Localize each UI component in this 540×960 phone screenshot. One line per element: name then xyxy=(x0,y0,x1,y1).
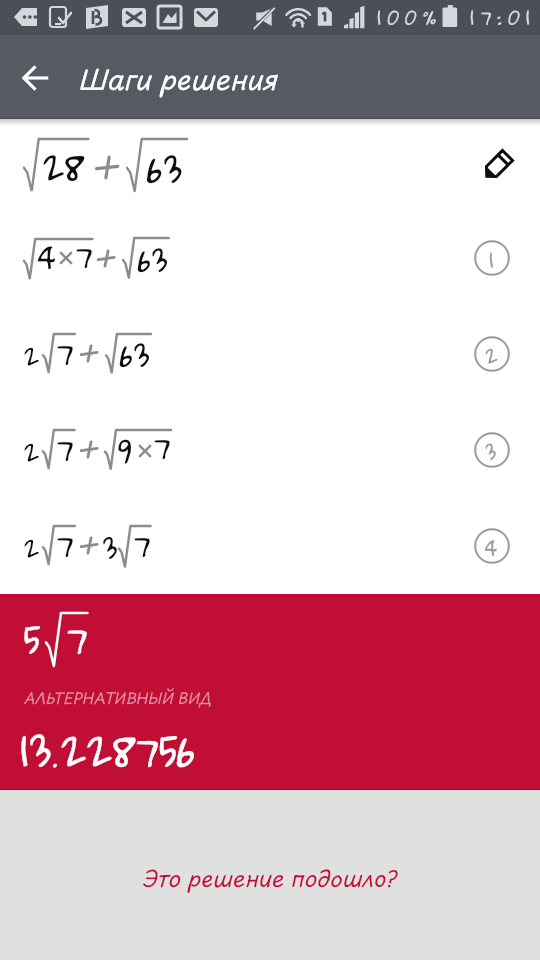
button[interactable]: Это решение подошло? xyxy=(147,861,402,894)
staticText: 13.228756 xyxy=(25,711,202,790)
button[interactable]: Edit xyxy=(474,142,520,188)
staticText: 1 xyxy=(491,240,496,276)
staticText: АЛЬТЕРНАТИВНЫЙ ВИД xyxy=(27,686,215,709)
staticText: 63 xyxy=(142,231,172,288)
staticText: 7 xyxy=(137,516,154,573)
staticText: 7 xyxy=(60,420,77,477)
button[interactable]: 2 xyxy=(0,498,540,594)
staticText: 100% xyxy=(380,0,447,33)
staticText: 4 xyxy=(42,228,60,285)
button[interactable]: Back xyxy=(12,54,60,102)
button[interactable]: Step 1 xyxy=(474,240,510,276)
button[interactable]: Step 3 xyxy=(474,432,510,468)
button[interactable]: 2 xyxy=(0,306,540,402)
button[interactable]: 2 xyxy=(0,402,540,498)
staticText: Это решение подошло? xyxy=(147,861,402,894)
button[interactable]: 28 xyxy=(0,119,540,210)
staticText: 7 xyxy=(79,227,96,284)
staticText: 2 xyxy=(27,524,43,572)
staticText: 17:01 xyxy=(473,0,540,33)
staticText: 63 xyxy=(124,326,154,383)
staticText: 3 xyxy=(106,521,122,575)
staticText: 7 xyxy=(60,324,77,381)
staticText: 28 xyxy=(47,133,89,200)
staticText: 2 xyxy=(27,428,43,476)
staticText: 2 xyxy=(27,332,43,380)
staticText: 3 xyxy=(487,432,499,468)
staticText: 7 xyxy=(60,516,77,573)
staticText: 4 xyxy=(487,528,500,564)
staticText: 5 xyxy=(28,603,46,674)
staticText: 7 xyxy=(157,418,174,475)
staticText: 7 xyxy=(71,603,93,674)
button[interactable]: 5 xyxy=(0,594,540,790)
staticText: 63 xyxy=(152,135,187,202)
staticText: 9 xyxy=(121,423,135,480)
staticText: 2 xyxy=(487,336,500,372)
button[interactable]: 4 xyxy=(0,210,540,306)
button[interactable]: Step 4 xyxy=(474,528,510,564)
staticText: Шаги решения xyxy=(85,58,284,99)
button[interactable]: Step 2 xyxy=(474,336,510,372)
